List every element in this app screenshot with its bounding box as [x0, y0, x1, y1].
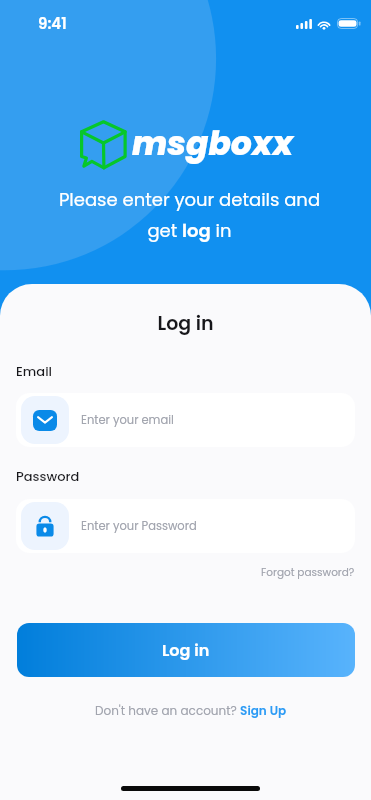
- staticText: msgboxx: [132, 120, 294, 166]
- button[interactable]: Forgot password?: [261, 565, 371, 580]
- staticText: Enter your email: [81, 412, 174, 428]
- staticText: 9:41: [38, 13, 67, 34]
- staticText: Log in: [0, 310, 371, 337]
- staticText: Email: [16, 362, 52, 380]
- button[interactable]: Email: [16, 393, 355, 447]
- button[interactable]: Log in: [17, 623, 355, 677]
- other: Password: [34, 514, 56, 538]
- staticText: Please enter your details and get log in: [4, 187, 371, 243]
- other: Email: [33, 410, 57, 431]
- button[interactable]: Don't have an account? Sign Up: [95, 702, 287, 719]
- button[interactable]: Password: [16, 499, 355, 553]
- staticText: Enter your Password: [81, 518, 197, 534]
- staticText: Password: [16, 467, 80, 485]
- other: msgboxx logo: [80, 120, 126, 168]
- staticText: Log in: [162, 639, 210, 661]
